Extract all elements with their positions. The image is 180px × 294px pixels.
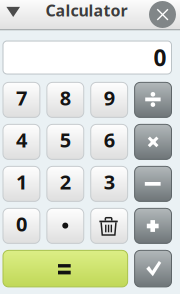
button[interactable]: 6 [91, 124, 128, 159]
button[interactable]: Divide [135, 82, 171, 117]
staticText: Calculator [45, 0, 127, 21]
button[interactable]: 7 [3, 82, 40, 117]
staticText: 3 [104, 168, 115, 195]
staticText: 0 [153, 42, 166, 72]
staticText: 4 [16, 126, 27, 153]
button[interactable]: Menu [0, 0, 28, 29]
button[interactable]: 9 [91, 82, 128, 117]
button[interactable]: 2 [47, 166, 84, 201]
button[interactable]: Multiply [135, 124, 171, 159]
staticText: 0 [16, 210, 27, 237]
button[interactable]: 5 [47, 124, 84, 159]
button[interactable]: Delete [91, 208, 128, 243]
button[interactable]: 8 [47, 82, 84, 117]
button[interactable]: 1 [3, 166, 40, 201]
button[interactable]: Minus [135, 166, 171, 201]
button[interactable]: Decimal point [47, 208, 84, 243]
button[interactable]: Equals [3, 250, 128, 287]
staticText: 7 [16, 84, 27, 111]
staticText: 8 [60, 84, 71, 111]
staticText: 5 [60, 126, 71, 153]
staticText: 6 [104, 126, 115, 153]
button[interactable]: 4 [3, 124, 40, 159]
button[interactable]: 0 [3, 208, 40, 243]
staticText: 9 [104, 84, 115, 111]
staticText: 1 [16, 168, 27, 195]
button[interactable]: Close [149, 1, 176, 28]
button[interactable]: 3 [91, 166, 128, 201]
button[interactable]: Plus [135, 208, 171, 243]
button[interactable]: Accept [135, 250, 171, 287]
staticText: 2 [60, 168, 71, 195]
